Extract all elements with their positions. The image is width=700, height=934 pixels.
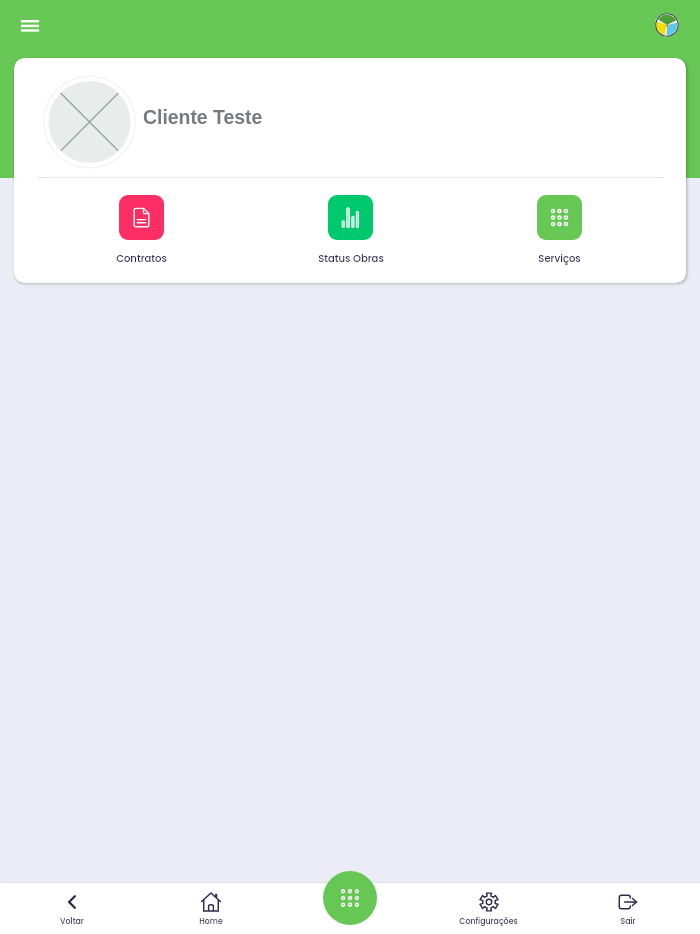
button[interactable]: Sair: [558, 883, 697, 934]
staticText: Voltar: [60, 916, 84, 927]
button[interactable]: Status Obras: [246, 195, 455, 265]
staticText: Serviços: [538, 251, 581, 265]
staticText: Sair: [620, 916, 636, 927]
button[interactable]: Aplicativos: [323, 871, 377, 925]
button[interactable]: Voltar: [3, 883, 141, 934]
button[interactable]: Serviços: [455, 195, 664, 265]
button[interactable]: Logotipo: [651, 9, 683, 41]
button[interactable]: Contratos: [37, 195, 246, 265]
staticText: Contratos: [116, 251, 167, 265]
button[interactable]: Configurações: [419, 883, 558, 934]
staticText: Status Obras: [318, 251, 384, 265]
staticText: Configurações: [459, 916, 518, 927]
staticText: Home: [199, 916, 223, 927]
button[interactable]: Menu: [10, 6, 50, 46]
staticText: Cliente Teste: [143, 106, 263, 128]
button[interactable]: Home: [141, 883, 280, 934]
